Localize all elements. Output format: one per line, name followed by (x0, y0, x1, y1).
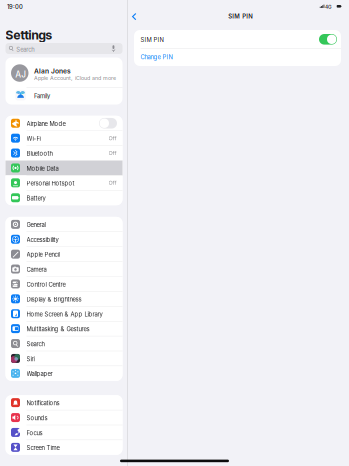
staticText: Home Screen & App Library (26, 311, 102, 318)
button[interactable]: Multitasking & Gestures (5, 321, 122, 336)
staticText: 4G (325, 4, 332, 10)
staticText: Search (26, 341, 44, 348)
staticText: Personal Hotspot (26, 180, 74, 187)
button[interactable]: Wallpaper (5, 366, 122, 381)
staticText: Sounds (26, 414, 47, 422)
staticText: Camera (26, 266, 46, 273)
button[interactable]: Mobile Data (5, 160, 122, 175)
button[interactable]: Display & Brightness (5, 291, 122, 306)
staticText: Family (34, 92, 50, 100)
staticText: Off (108, 179, 116, 186)
button[interactable]: Home Screen & App Library (5, 306, 122, 321)
staticText: Off (108, 135, 116, 141)
staticText: 19:00 (7, 3, 23, 10)
button[interactable]: Search (5, 336, 122, 351)
staticText: Multitasking & Gestures (26, 326, 89, 333)
staticText: Off (108, 150, 116, 156)
staticText: Accessibility (26, 236, 58, 243)
button[interactable]: Personal Hotspot (5, 175, 122, 190)
staticText: Apple Pencil (26, 251, 59, 258)
staticText: Change PIN (140, 53, 172, 61)
staticText: Alan Jones (34, 67, 71, 75)
staticText: Bluetooth (26, 150, 52, 157)
staticText: Airplane Mode (26, 120, 65, 127)
staticText: Focus (26, 429, 42, 436)
staticText: Wallpaper (26, 370, 52, 377)
staticText: Apple Account, iCloud and more (34, 75, 116, 81)
button[interactable]: Screen Time (5, 440, 122, 455)
button[interactable]: Change PIN (140, 48, 340, 65)
staticText: Mobile Data (26, 165, 58, 172)
staticText: Wi-Fi (26, 135, 40, 142)
staticText: Battery (26, 195, 45, 202)
button[interactable]: Back (128, 9, 140, 24)
button[interactable]: Airplane Mode (5, 116, 122, 131)
button[interactable]: General (5, 217, 122, 232)
button[interactable]: Apple Pencil (5, 247, 122, 262)
button[interactable]: Siri (5, 351, 122, 366)
staticText: Notifications (26, 400, 59, 407)
staticText: Display & Brightness (26, 296, 81, 303)
staticText: General (26, 221, 45, 228)
staticText: SIM PIN (140, 36, 163, 43)
button[interactable]: Wi-Fi (5, 131, 122, 146)
button[interactable]: Bluetooth (5, 146, 122, 160)
staticText: AJ (15, 69, 26, 79)
button[interactable]: Focus (5, 425, 122, 440)
button[interactable]: Notifications (5, 395, 122, 410)
button[interactable]: Control Centre (5, 276, 122, 291)
staticText: Screen Time (26, 444, 59, 451)
button[interactable]: Battery (5, 190, 122, 205)
staticText: Control Centre (26, 281, 65, 288)
staticText: SIM PIN (228, 13, 253, 20)
staticText: Settings (5, 27, 51, 42)
staticText: Siri (26, 355, 34, 362)
button[interactable]: SIM PIN (317, 32, 339, 47)
staticText: Search (16, 46, 34, 53)
button[interactable]: Camera (5, 262, 122, 276)
button[interactable]: Accessibility (5, 232, 122, 247)
button[interactable]: Sounds (5, 410, 122, 425)
